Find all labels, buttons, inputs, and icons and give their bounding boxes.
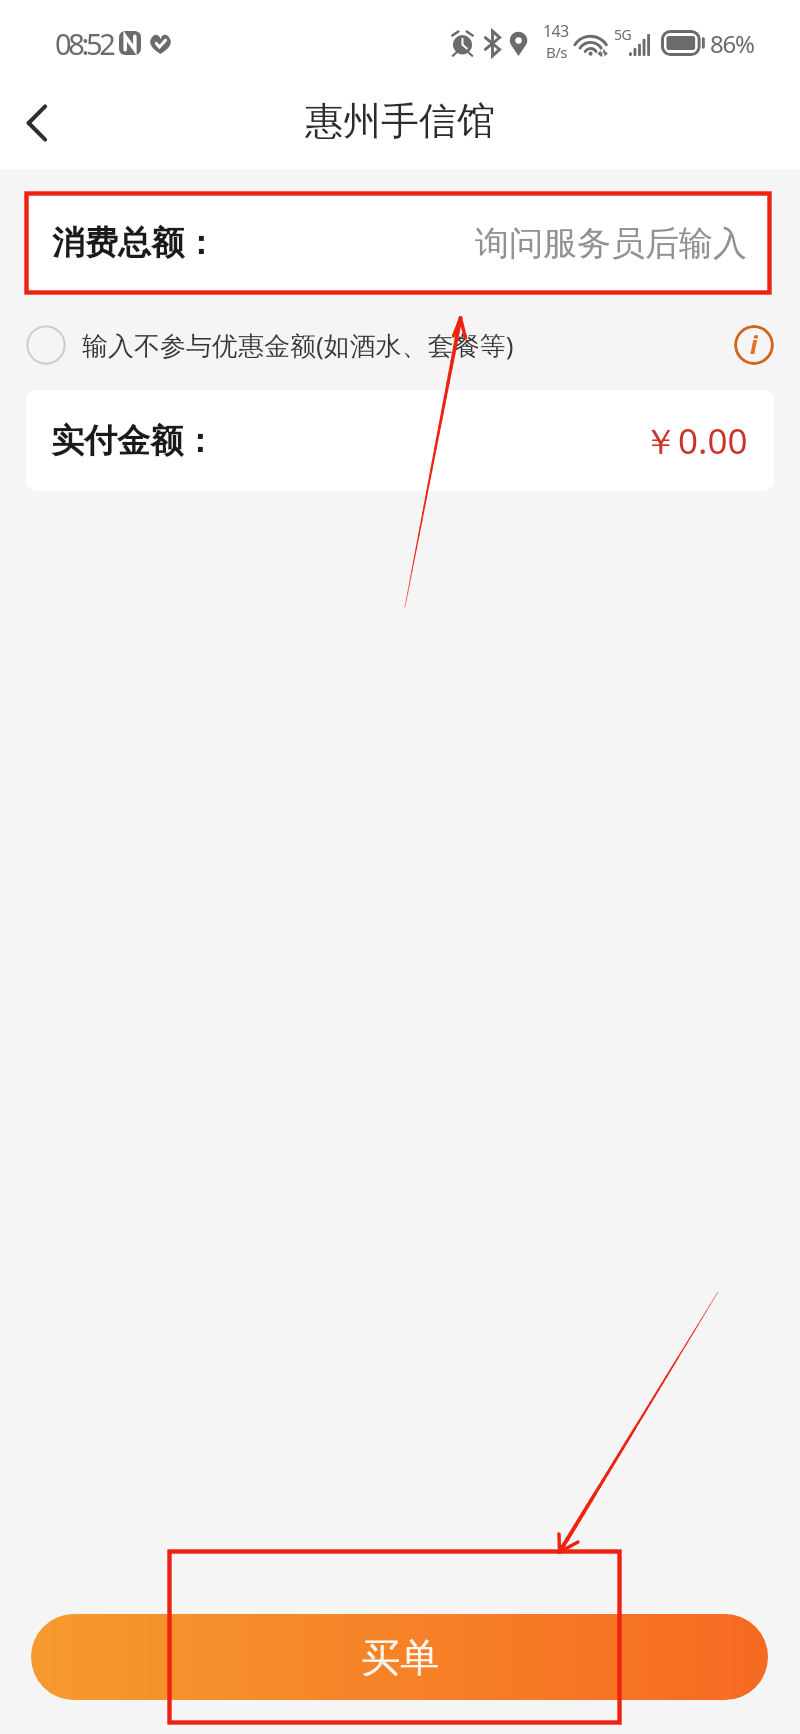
staticText: 08:52 — [55, 24, 113, 63]
staticText: 5G — [614, 25, 631, 44]
staticText: 实付金额： — [51, 420, 216, 462]
staticText: 输入不参与优惠金额(如酒水、套餐等) — [82, 327, 514, 363]
button[interactable]: 买单 — [31, 1614, 768, 1700]
button[interactable]: 实付金额： — [26, 390, 774, 491]
button[interactable]: Info — [734, 325, 774, 365]
staticText: 消费总额： — [52, 222, 217, 264]
staticText: 143 — [543, 20, 569, 42]
staticText: ￥0.00 — [643, 417, 748, 465]
staticText: i — [750, 327, 758, 361]
staticText: 询问服务员后输入 — [475, 222, 747, 265]
button[interactable]: Select option — [0, 291, 800, 390]
staticText: 惠州手信馆 — [305, 97, 495, 145]
staticText: 买单 — [361, 1633, 439, 1682]
staticText: 86% — [710, 27, 754, 60]
button[interactable]: Select option — [26, 325, 66, 365]
staticText: B/s — [546, 42, 567, 62]
button[interactable]: Back — [6, 92, 68, 154]
button[interactable]: 消费总额： — [27, 195, 773, 291]
